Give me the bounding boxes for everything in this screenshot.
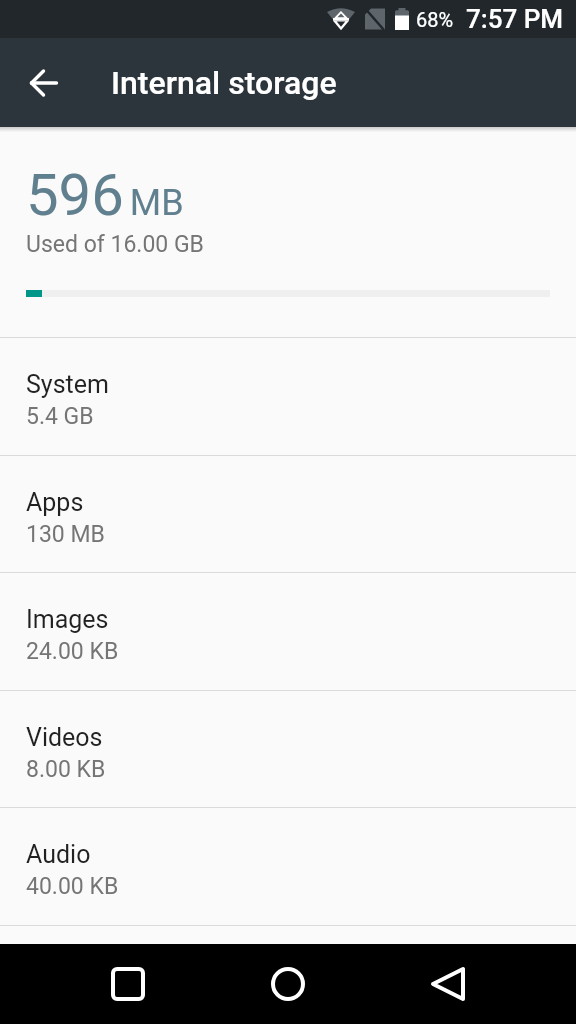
staticText: 40.00 KB [26,873,119,900]
staticText: 24.00 KB [26,638,119,665]
button[interactable]: Audio [0,808,576,925]
staticText: Audio [26,840,91,869]
staticText: Apps [26,488,84,517]
staticText: Images [26,605,109,634]
button[interactable]: System [0,338,576,455]
staticText: 68% [416,8,454,31]
staticText: Used of 16.00 GB [26,231,204,258]
staticText: Videos [26,723,103,752]
button[interactable] [24,63,64,103]
button[interactable] [408,944,488,1024]
staticText: 596 MB [26,161,184,229]
staticText: 8.00 KB [26,756,106,783]
staticText: 130 MB [26,521,105,548]
staticText: Internal storage [111,64,337,102]
staticText: 5.4 GB [26,403,94,430]
button[interactable]: Apps [0,456,576,572]
staticText: 7:57 PM [466,4,564,34]
button[interactable] [88,944,168,1024]
staticText: System [26,370,109,399]
button[interactable]: Videos [0,691,576,807]
button[interactable] [248,944,328,1024]
button[interactable]: Images [0,573,576,690]
